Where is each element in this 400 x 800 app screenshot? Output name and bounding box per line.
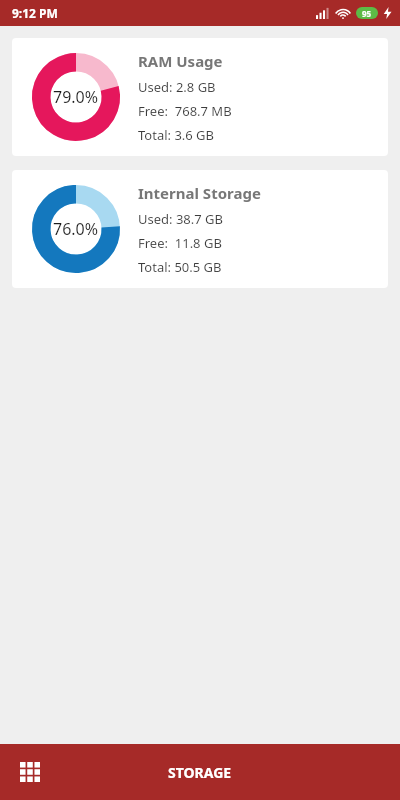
staticText: Total: 3.6 GB [138, 126, 215, 144]
staticText: Total: 50.5 GB [138, 258, 222, 276]
button[interactable]: 79.0% [12, 38, 388, 156]
staticText: Free: 768.7 MB [138, 102, 232, 120]
staticText: STORAGE [168, 763, 232, 782]
staticText: 76.0% [53, 218, 99, 240]
button[interactable]: STORAGE [168, 763, 232, 782]
staticText: Internal Storage [138, 183, 261, 203]
staticText: Used: 38.7 GB [138, 210, 224, 228]
button[interactable]: Apps [8, 750, 52, 794]
staticText: Free: 11.8 GB [138, 234, 222, 252]
staticText: 79.0% [53, 86, 99, 108]
staticText: 95 [362, 8, 372, 19]
staticText: 9:12 PM [12, 5, 58, 21]
button[interactable]: 76.0% [12, 170, 388, 288]
staticText: RAM Usage [138, 51, 223, 71]
staticText: Used: 2.8 GB [138, 78, 216, 96]
